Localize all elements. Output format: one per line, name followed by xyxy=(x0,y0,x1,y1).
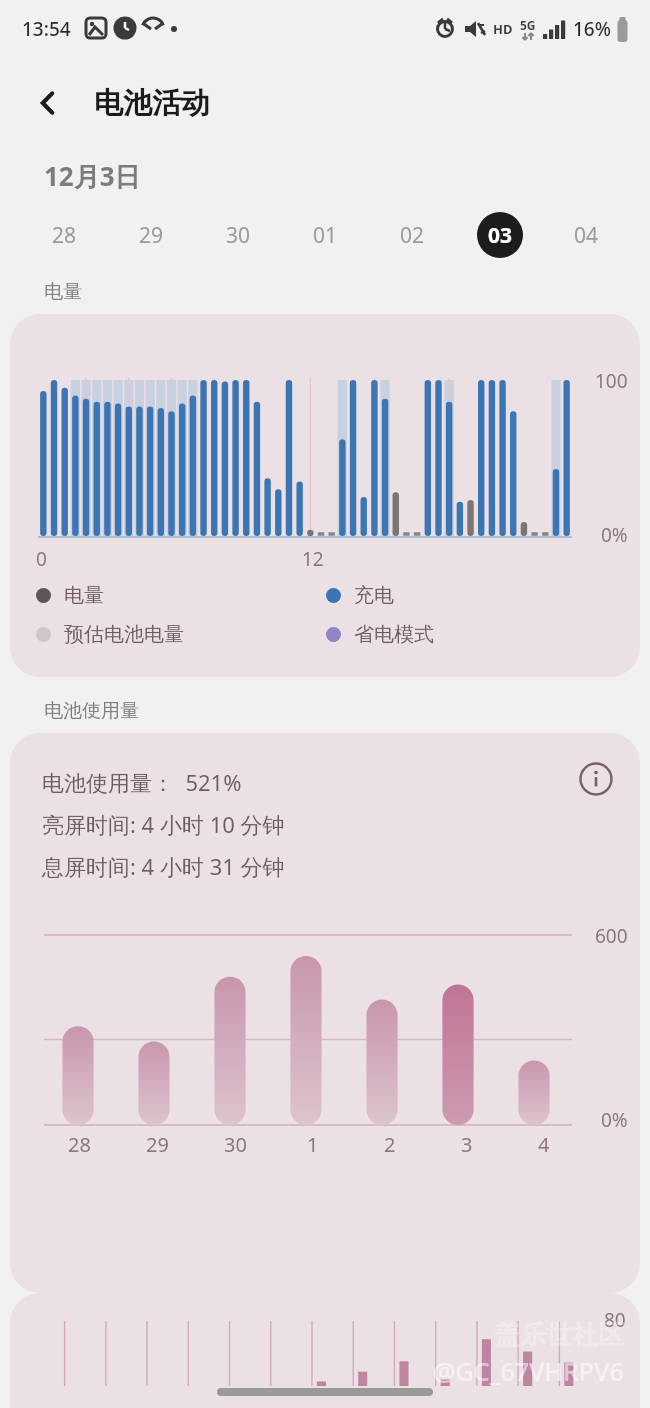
staticText: 12 xyxy=(302,546,324,572)
staticText: @GC_67VHRPV6 xyxy=(433,1354,624,1388)
staticText: 省电模式 xyxy=(354,622,434,647)
staticText: 电量 xyxy=(64,583,104,608)
staticText: 13:54 xyxy=(22,16,71,42)
staticText: 2 xyxy=(384,1131,396,1158)
button[interactable]: 04 xyxy=(543,204,630,266)
staticText: 29 xyxy=(139,221,164,250)
staticText: 28 xyxy=(52,221,77,250)
staticText: 电池使用量 xyxy=(44,699,139,723)
button[interactable]: 29 xyxy=(108,204,195,266)
staticText: 80 xyxy=(604,1307,626,1333)
staticText: 5G xyxy=(520,17,536,33)
staticText: 0% xyxy=(601,1107,628,1133)
staticText: 12月3日 xyxy=(44,158,141,194)
button[interactable]: 02 xyxy=(369,204,456,266)
staticText: 30 xyxy=(226,221,251,250)
staticText: 04 xyxy=(574,221,599,250)
staticText: 0% xyxy=(601,522,628,548)
staticText: HD xyxy=(493,20,513,38)
staticText: 电池使用量： 521% xyxy=(42,767,242,797)
staticText: 03 xyxy=(488,221,513,250)
staticText: 亮屏时间: 4 小时 10 分钟 xyxy=(42,809,285,839)
staticText: 3 xyxy=(461,1131,473,1158)
staticText: 息屏时间: 4 小时 31 分钟 xyxy=(42,851,285,881)
button[interactable]: 28 xyxy=(20,204,108,266)
staticText: 29 xyxy=(146,1131,169,1158)
button[interactable]: 返回 xyxy=(24,79,72,127)
staticText: 30 xyxy=(224,1131,247,1158)
staticText: 0 xyxy=(36,546,47,572)
staticText: 预估电池电量 xyxy=(64,622,184,647)
button[interactable]: 03 xyxy=(456,204,543,266)
staticText: 1 xyxy=(307,1131,319,1158)
staticText: 电量 xyxy=(44,280,82,304)
staticText: 28 xyxy=(68,1131,91,1158)
button[interactable]: 信息 xyxy=(572,755,620,803)
button[interactable]: 100 xyxy=(10,314,640,677)
staticText: 4 xyxy=(538,1131,550,1158)
staticText: 02 xyxy=(400,221,425,250)
button[interactable]: 电池使用量： 521% xyxy=(10,733,640,1293)
staticText: 电池活动 xyxy=(94,85,210,122)
button[interactable]: 30 xyxy=(195,204,282,266)
staticText: 充电 xyxy=(354,583,394,608)
staticText: 盖乐世社区 xyxy=(494,1319,624,1352)
button[interactable]: 01 xyxy=(282,204,369,266)
staticText: 16% xyxy=(573,16,611,42)
staticText: 100 xyxy=(595,368,628,394)
staticText: 01 xyxy=(313,221,338,250)
staticText: 600 xyxy=(595,923,628,949)
